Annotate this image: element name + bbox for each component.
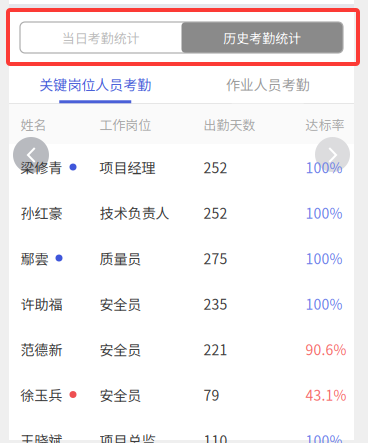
staticText: 关键岗位人员考勤 (39, 74, 151, 94)
staticText: 252 (203, 157, 227, 177)
staticText: 历史考勤统计 (223, 28, 301, 47)
staticText: 43.1% (305, 384, 346, 405)
staticText: 110 (203, 430, 227, 443)
button[interactable]: 关键岗位人员考勤 (9, 74, 181, 103)
staticText: 275 (203, 248, 227, 268)
staticText: 235 (203, 293, 227, 314)
staticText: 姓名 (20, 115, 46, 134)
staticText: 技术负责人 (99, 202, 169, 223)
staticText: 孙红豪 (20, 202, 62, 223)
staticText: 79 (203, 384, 219, 405)
staticText: 252 (203, 202, 227, 223)
staticText: 221 (203, 339, 227, 359)
staticText: 安全员 (99, 384, 141, 405)
staticText: 100% (305, 157, 342, 177)
staticText: 90.6% (305, 339, 346, 359)
button[interactable]: 当日考勤统计 (20, 22, 181, 53)
staticText: 当日考勤统计 (62, 28, 140, 47)
button[interactable]: 下一页 (315, 137, 351, 173)
staticText: 100% (305, 202, 342, 223)
staticText: 质量员 (99, 248, 141, 268)
staticText: 安全员 (99, 293, 141, 314)
button[interactable]: 上一页 (13, 137, 49, 173)
staticText: 100% (305, 430, 342, 443)
button[interactable]: 历史考勤统计 (181, 22, 343, 53)
staticText: 安全员 (99, 339, 141, 359)
staticText: 范德新 (20, 339, 62, 359)
staticText: 徐玉兵 (20, 384, 62, 405)
staticText: 许助福 (20, 293, 62, 314)
staticText: 100% (305, 248, 342, 268)
staticText: 出勤天数 (203, 115, 255, 134)
staticText: 作业人员考勤 (226, 74, 310, 94)
staticText: 100% (305, 293, 342, 314)
staticText: 梁修青 (20, 157, 62, 177)
button[interactable]: 作业人员考勤 (181, 74, 354, 103)
staticText: 项目经理 (99, 157, 155, 177)
staticText: 项目总监 (99, 430, 155, 443)
staticText: 工作岗位 (99, 115, 151, 134)
staticText: 鄢雲 (20, 248, 48, 268)
staticText: 达标率 (305, 115, 344, 134)
staticText: 王晓斌 (20, 430, 62, 443)
